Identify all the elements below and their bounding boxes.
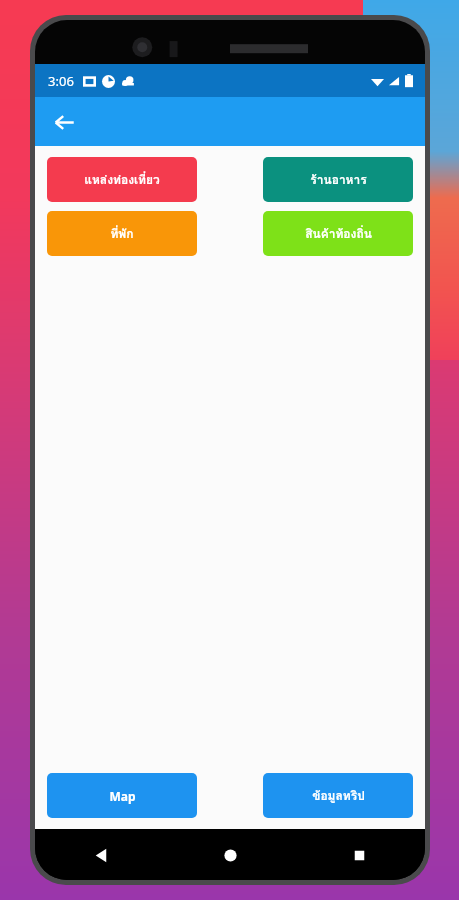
button[interactable]: ที่พัก [47,211,197,256]
button[interactable]: Back [41,99,87,145]
staticText: สินค้าท้องถิ่น [305,224,372,243]
button[interactable]: แหล่งท่องเที่ยว [47,157,197,202]
staticText: Map [109,788,136,804]
button[interactable]: ข้อมูลทริป [263,773,413,818]
staticText: ที่พัก [110,224,134,243]
staticText: แหล่งท่องเที่ยว [84,170,160,189]
button[interactable]: ร้านอาหาร [263,157,413,202]
button[interactable]: Map [47,773,197,818]
button[interactable]: Recent apps [337,833,381,877]
staticText: ข้อมูลทริป [312,786,365,805]
button[interactable]: สินค้าท้องถิ่น [263,211,413,256]
staticText: ร้านอาหาร [310,170,367,189]
staticText: 3:06 [48,72,74,90]
button[interactable]: Home [208,833,252,877]
button[interactable]: Back [79,833,123,877]
